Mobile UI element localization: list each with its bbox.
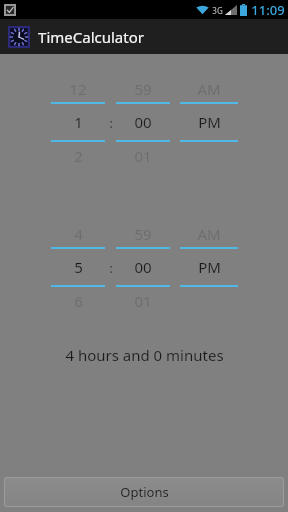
staticText: AM xyxy=(197,79,221,99)
staticText: PM xyxy=(198,257,221,277)
staticText: 6 xyxy=(74,291,83,311)
staticText: 4 hours and 0 minutes xyxy=(65,345,224,365)
staticText: 01 xyxy=(134,291,152,311)
staticText: 00 xyxy=(134,257,152,277)
staticText: 1 xyxy=(74,112,83,132)
staticText: 11:09 xyxy=(251,1,285,19)
staticText: 4 xyxy=(74,224,83,244)
button[interactable]: Options xyxy=(4,477,284,507)
button[interactable]: Minute picker xyxy=(116,221,170,315)
button[interactable]: AM PM picker xyxy=(180,221,238,315)
button[interactable]: Hour picker xyxy=(51,76,105,170)
staticText: AM xyxy=(197,224,221,244)
staticText: : xyxy=(109,260,113,276)
staticText: : xyxy=(109,115,113,131)
staticText: 59 xyxy=(134,224,152,244)
staticText: 01 xyxy=(134,146,152,166)
button[interactable]: AM PM picker xyxy=(180,76,238,170)
staticText: 00 xyxy=(134,112,152,132)
staticText: 3G xyxy=(212,5,223,16)
staticText: Options xyxy=(120,483,169,501)
staticText: 12 xyxy=(69,79,87,99)
button[interactable]: Minute picker xyxy=(116,76,170,170)
staticText: PM xyxy=(198,112,221,132)
staticText: 59 xyxy=(134,79,152,99)
staticText: TimeCalculator xyxy=(38,27,144,47)
staticText: 5 xyxy=(74,257,83,277)
button[interactable]: Hour picker xyxy=(51,221,105,315)
staticText: 2 xyxy=(74,146,83,166)
